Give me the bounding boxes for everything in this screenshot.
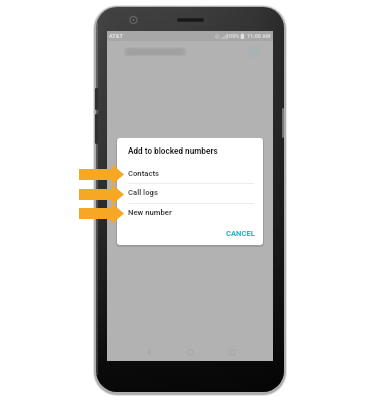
button[interactable]: New number option [79,203,124,224]
staticText: New number [128,208,172,217]
button[interactable]: New number [117,203,263,222]
button[interactable]: Contacts [117,164,263,183]
button[interactable]: Contacts option [79,164,124,185]
button[interactable]: Call logs option [79,184,124,205]
button[interactable]: CANCEL [222,225,259,242]
staticText: 11:00 AM [247,33,271,39]
button[interactable]: Call logs [117,183,263,202]
staticText: Call logs [128,188,158,197]
staticText: Contacts [128,169,159,178]
staticText: AT&T [109,33,123,39]
staticText: CANCEL [226,229,255,238]
staticText: Add to blocked numbers [128,146,218,156]
staticText: 100% [226,33,240,39]
